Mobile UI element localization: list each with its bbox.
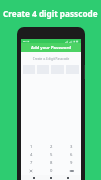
staticText: 7 <box>30 160 33 166</box>
staticText: 0 <box>50 168 53 174</box>
staticText: Add your Password <box>31 45 71 51</box>
staticText: 8 <box>50 160 53 166</box>
button[interactable]: 2 <box>41 143 61 151</box>
button[interactable]: 5 <box>41 151 61 159</box>
button[interactable]: 7 <box>21 159 41 167</box>
staticText: Create a 4 digit Passcode <box>21 57 81 61</box>
staticText: 3 <box>70 144 73 150</box>
button[interactable]: 9 <box>61 159 81 167</box>
staticText: 2 <box>50 144 53 150</box>
button[interactable]: Back <box>30 175 38 180</box>
staticText: 9 <box>70 160 73 166</box>
button[interactable]: 4 <box>21 151 41 159</box>
button[interactable]: 6 <box>61 151 81 159</box>
button[interactable]: Home <box>47 175 55 180</box>
button[interactable]: 3 <box>61 143 81 151</box>
button[interactable]: Clear <box>21 167 41 175</box>
button[interactable]: Recents <box>64 175 72 180</box>
staticText: Create 4 digit passcode <box>3 8 98 19</box>
staticText: 4 <box>30 152 33 158</box>
staticText: 6 <box>70 152 73 158</box>
staticText: 5 <box>50 152 53 158</box>
button[interactable]: 0 <box>41 167 61 175</box>
button[interactable]: 8 <box>41 159 61 167</box>
button[interactable]: Backspace <box>61 167 81 175</box>
button[interactable]: 1 <box>21 143 41 151</box>
staticText: 1 <box>30 144 33 150</box>
